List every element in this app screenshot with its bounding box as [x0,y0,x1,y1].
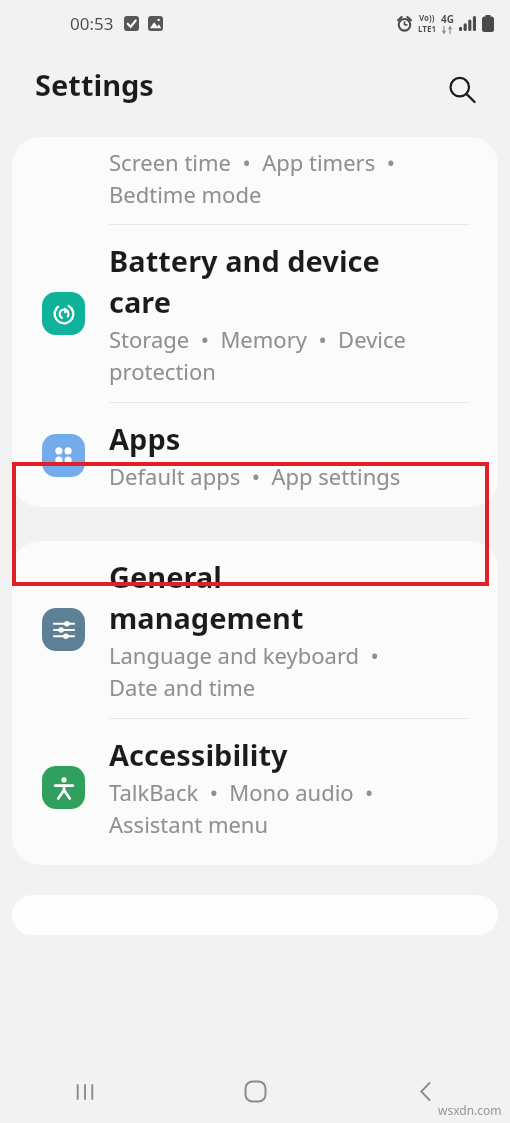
staticText: LTE1 [418,23,436,34]
staticText: Battery and device [109,241,380,280]
staticText: Vo)) [419,12,435,23]
staticText: Apps [109,419,181,458]
staticText: Assistant menu [109,809,269,839]
button[interactable]: Battery and device [12,225,498,402]
button[interactable]: Search [438,66,486,114]
button[interactable]: Accessibility [12,719,498,855]
staticText: Date and time [109,672,256,702]
button[interactable]: General [12,541,498,718]
staticText: Screen time • App timers • [109,147,395,177]
button[interactable]: Home [170,1060,340,1123]
staticText: management [109,598,304,637]
button[interactable]: Apps [12,403,498,507]
staticText: Default apps • App settings [109,461,401,491]
staticText: Accessibility [109,735,288,774]
staticText: General [109,557,222,596]
button[interactable]: Screen time • App timers • [12,137,498,224]
button[interactable]: Back [340,1060,510,1123]
staticText: Language and keyboard • [109,640,379,670]
staticText: care [109,282,172,321]
staticText: Settings [35,65,154,104]
staticText: TalkBack • Mono audio • [109,777,374,807]
button[interactable]: Recents [0,1060,170,1123]
staticText: 00:53 [70,12,114,35]
staticText: Bedtime mode [109,179,262,209]
staticText: wsxdn.com [438,1102,502,1118]
staticText: Storage • Memory • Device [109,324,406,354]
staticText: 4G [441,12,454,26]
staticText: protection [109,356,216,386]
